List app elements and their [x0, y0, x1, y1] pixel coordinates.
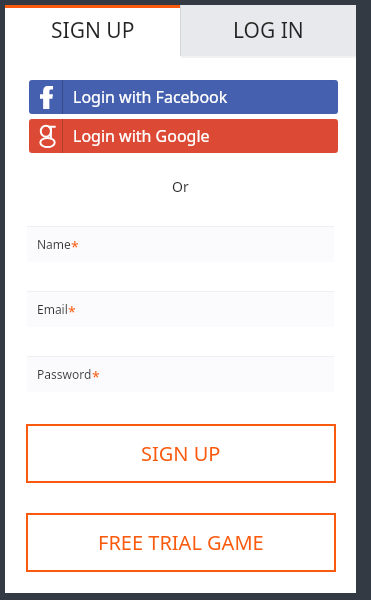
staticText: Login with Google: [73, 125, 210, 147]
button[interactable]: Name: [27, 226, 334, 262]
button[interactable]: FREE TRIAL GAME: [26, 513, 336, 572]
button[interactable]: SIGN UP: [5, 5, 180, 56]
staticText: *: [71, 237, 79, 256]
staticText: *: [68, 302, 76, 321]
staticText: FREE TRIAL GAME: [98, 529, 264, 556]
button[interactable]: SIGN UP: [26, 424, 336, 483]
staticText: Password: [37, 366, 92, 382]
staticText: Or: [172, 177, 189, 196]
button[interactable]: Login with Facebook: [29, 80, 338, 114]
staticText: SIGN UP: [141, 440, 221, 467]
staticText: *: [92, 367, 100, 386]
staticText: Email: [37, 301, 68, 317]
button[interactable]: Email: [27, 291, 334, 327]
staticText: SIGN UP: [51, 16, 135, 45]
button[interactable]: Login with Google: [29, 119, 338, 153]
button[interactable]: LOG IN: [180, 5, 356, 56]
staticText: Login with Facebook: [73, 86, 228, 108]
staticText: Name: [37, 236, 71, 252]
button[interactable]: Password: [27, 356, 334, 392]
staticText: LOG IN: [233, 16, 304, 45]
